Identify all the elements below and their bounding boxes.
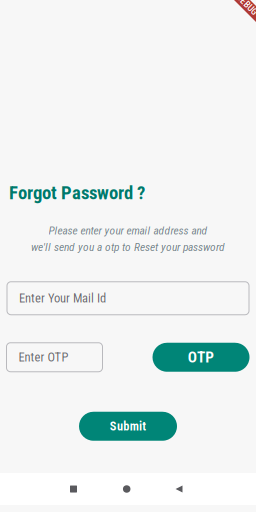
staticText: Enter OTP	[18, 350, 68, 365]
button[interactable]: Enter Your Mail Id	[7, 282, 249, 315]
button[interactable]: Enter OTP	[6, 343, 102, 372]
button[interactable]: OTP	[152, 343, 249, 372]
staticText: Submit	[110, 419, 146, 433]
staticText: we'll send you a otp to Reset your passw…	[31, 240, 225, 254]
button[interactable]: Recent apps	[56, 473, 90, 505]
button[interactable]: Back	[162, 473, 196, 505]
staticText: DEBUG	[234, 0, 256, 10]
staticText: Forgot Password ?	[9, 182, 145, 204]
staticText: Enter Your Mail Id	[19, 291, 106, 306]
staticText: OTP	[188, 348, 214, 366]
button[interactable]: Submit	[79, 412, 177, 441]
staticText: Please enter your email address and	[48, 224, 207, 237]
button[interactable]: Home	[110, 473, 144, 505]
